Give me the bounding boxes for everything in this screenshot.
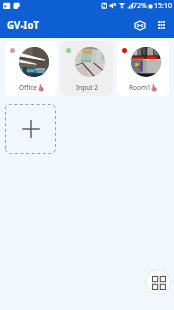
button[interactable]: Apps xyxy=(148,12,174,38)
button[interactable]: Add device xyxy=(5,104,56,154)
staticText: 15:10 xyxy=(154,1,172,11)
staticText: Office xyxy=(19,83,38,92)
button[interactable]: Grid view xyxy=(145,269,171,295)
staticText: Input 2 xyxy=(76,83,98,92)
button[interactable]: Input 2 xyxy=(61,41,113,96)
button[interactable]: Office xyxy=(5,41,57,96)
staticText: GV-IoT xyxy=(7,19,40,32)
button[interactable]: Room1 xyxy=(117,41,169,96)
staticText: 72% xyxy=(133,1,147,11)
button[interactable]: Scenes xyxy=(131,12,148,38)
staticText: Room1 xyxy=(129,83,151,92)
